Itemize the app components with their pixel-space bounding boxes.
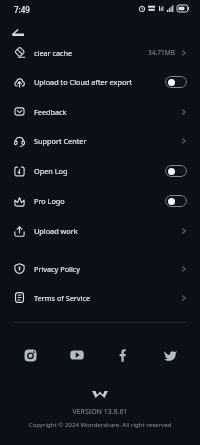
staticText: Privacy Policy bbox=[34, 264, 81, 274]
button[interactable]: Open Log bbox=[165, 165, 187, 177]
staticText: Pro Logo bbox=[34, 196, 65, 206]
button[interactable]: Facebook bbox=[113, 345, 133, 365]
button[interactable]: Privacy Policy bbox=[0, 254, 200, 283]
button[interactable]: Upload to Cloud after export bbox=[0, 67, 200, 97]
staticText: 7:49 bbox=[14, 4, 30, 15]
button[interactable]: Pro Logo bbox=[0, 186, 200, 216]
staticText: Feedback bbox=[34, 107, 67, 117]
staticText: Upload to Cloud after export bbox=[34, 77, 132, 87]
button[interactable]: YouTube bbox=[67, 345, 87, 365]
button[interactable]: Twitter bbox=[160, 345, 180, 365]
button[interactable]: Upload to Cloud after export bbox=[165, 76, 187, 88]
button[interactable]: clear cache bbox=[0, 38, 200, 67]
button[interactable]: Pro Logo bbox=[165, 195, 187, 207]
staticText: Support Center bbox=[34, 136, 87, 146]
staticText: Upload work bbox=[34, 226, 78, 236]
staticText: Terms of Service bbox=[34, 293, 91, 303]
button[interactable]: Open Log bbox=[0, 156, 200, 186]
staticText: Copyright © 2024 Wondershare. All right … bbox=[0, 420, 200, 428]
staticText: 34.71MB bbox=[148, 48, 176, 57]
button[interactable]: Back bbox=[6, 23, 30, 42]
button[interactable]: Instagram bbox=[20, 345, 40, 365]
staticText: clear cache bbox=[34, 48, 73, 58]
button[interactable]: Upload work bbox=[0, 216, 200, 246]
button[interactable]: Feedback bbox=[0, 97, 200, 126]
staticText: VERSION 13.8.61 bbox=[0, 407, 200, 417]
button[interactable]: Support Center bbox=[0, 126, 200, 156]
button[interactable]: Terms of Service bbox=[0, 283, 200, 312]
staticText: Open Log bbox=[34, 166, 68, 176]
